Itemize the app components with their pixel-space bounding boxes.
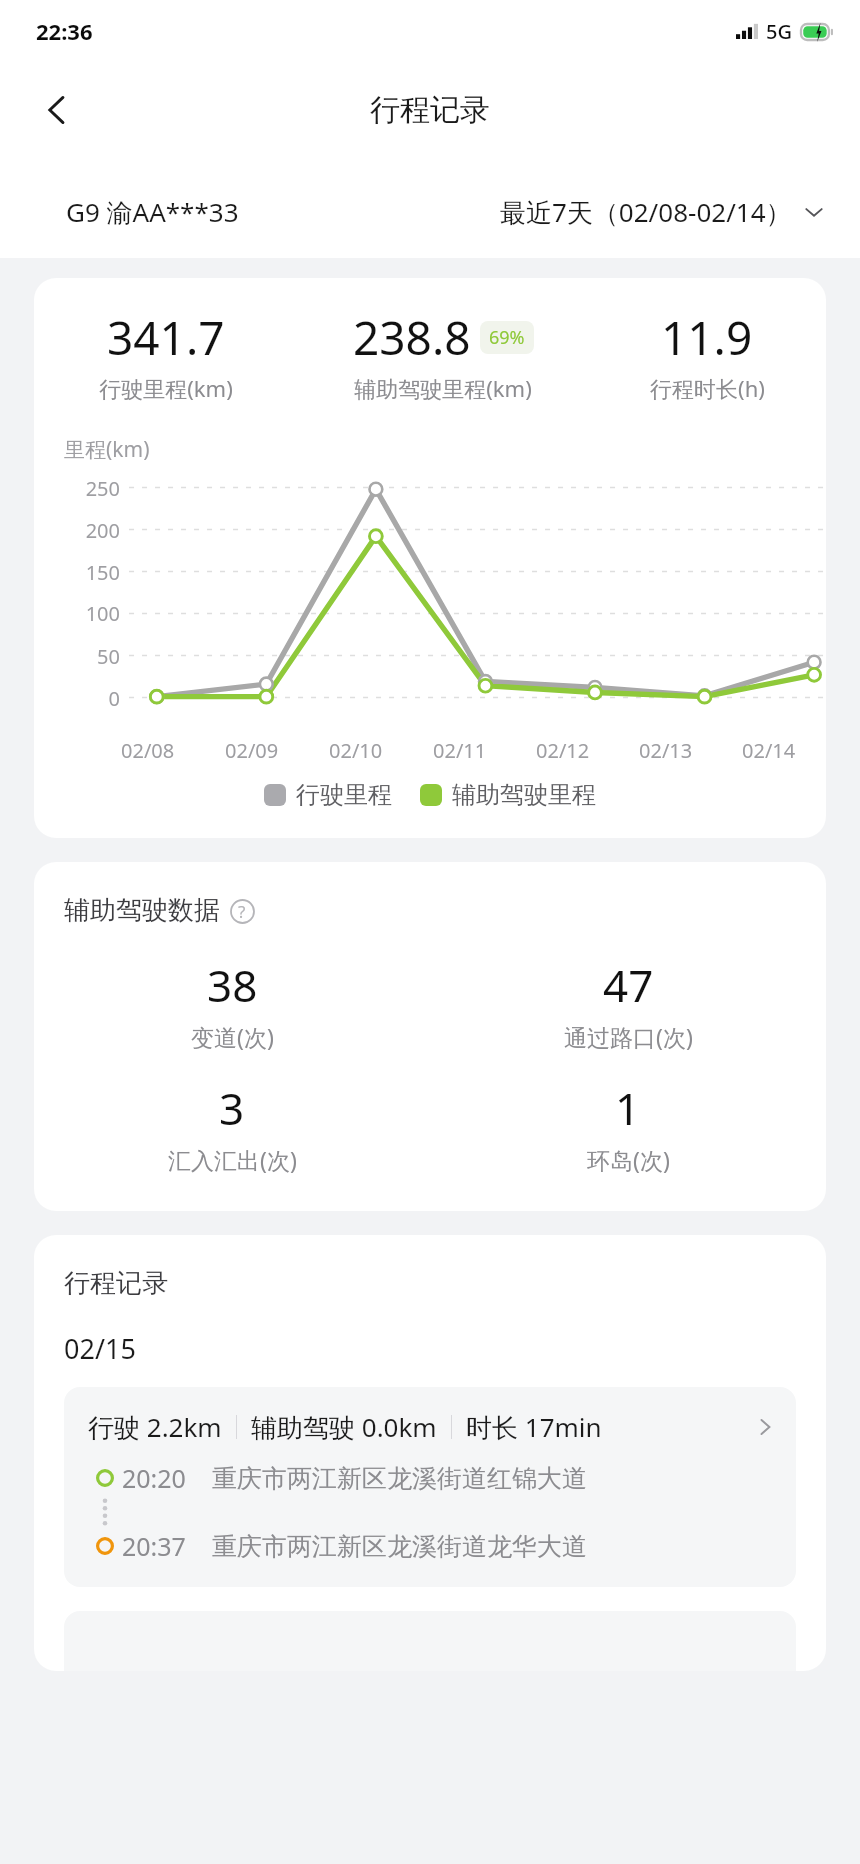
staticText: 行程时长(h) [650, 373, 765, 403]
staticText: 02/08 [121, 737, 175, 764]
staticText: 重庆市两江新区龙溪街道红锦大道 [212, 1463, 587, 1494]
button[interactable]: 行驶 2.2km [64, 1387, 796, 1587]
staticText: 辅助驾驶里程(km) [354, 373, 532, 403]
button[interactable]: 3 [34, 1078, 430, 1175]
staticText: 行程记录 [64, 1267, 168, 1300]
staticText: 辅助驾驶数据 [64, 894, 220, 927]
button[interactable]: 341.7 [34, 306, 298, 403]
button[interactable]: Back [24, 77, 90, 143]
staticText: 辅助驾驶里程 [452, 780, 596, 810]
staticText: 通过路口(次) [564, 1021, 693, 1052]
staticText: 22:36 [36, 16, 93, 46]
staticText: 行驶里程(km) [99, 373, 233, 403]
staticText: 38 [207, 955, 258, 1015]
staticText: 行驶里程 [296, 780, 392, 810]
staticText: 里程(km) [64, 435, 150, 464]
staticText: 最近7天（02/08-02/14） [500, 194, 792, 230]
button[interactable]: 47 [430, 955, 826, 1052]
staticText: 1 [615, 1078, 641, 1138]
staticText: 0 [58, 685, 120, 712]
button[interactable]: 说明 [228, 897, 256, 925]
staticText: 47 [603, 955, 654, 1015]
button[interactable]: 238.8 [298, 306, 588, 403]
staticText: 69% [489, 325, 525, 350]
button[interactable]: 11.9 [588, 306, 826, 403]
staticText: 50 [58, 643, 120, 670]
staticText: ? [238, 900, 246, 923]
staticText: 汇入汇出(次) [168, 1144, 297, 1175]
staticText: 02/10 [329, 737, 383, 764]
staticText: 5G [766, 18, 792, 45]
staticText: 02/15 [64, 1330, 136, 1367]
staticText: 238.8 [353, 306, 471, 369]
staticText: 100 [58, 600, 120, 627]
staticText: 行驶 2.2km [88, 1409, 222, 1445]
staticText: 辅助驾驶 0.0km [251, 1409, 437, 1445]
button[interactable]: 38 [34, 955, 430, 1052]
staticText: 环岛(次) [587, 1144, 670, 1175]
staticText: 02/11 [433, 737, 487, 764]
staticText: 02/13 [639, 737, 693, 764]
staticText: 02/12 [536, 737, 590, 764]
staticText: 行程记录 [370, 91, 490, 129]
staticText: 250 [58, 475, 120, 502]
button[interactable]: G9 渝AA***33 [66, 194, 239, 230]
staticText: 重庆市两江新区龙溪街道龙华大道 [212, 1531, 587, 1562]
staticText: 20:37 [122, 1529, 186, 1563]
button[interactable]: 最近7天（02/08-02/14） [500, 194, 826, 230]
staticText: 02/14 [742, 737, 796, 764]
staticText: 3 [219, 1078, 245, 1138]
staticText: 150 [58, 559, 120, 586]
staticText: 200 [58, 517, 120, 544]
staticText: 341.7 [107, 306, 225, 369]
staticText: 11.9 [661, 306, 753, 369]
staticText: 时长 17min [466, 1409, 602, 1445]
staticText: 02/09 [225, 737, 279, 764]
staticText: 变道(次) [191, 1021, 274, 1052]
button[interactable]: 1 [430, 1078, 826, 1175]
staticText: 20:20 [122, 1461, 186, 1495]
